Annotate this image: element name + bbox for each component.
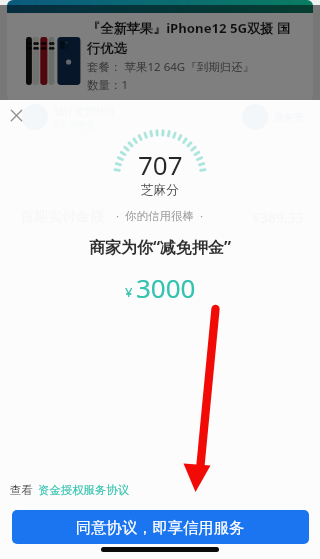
staticText: · 你的信用很棒 · xyxy=(116,208,204,224)
staticText: 芝麻分 xyxy=(141,182,179,198)
staticText: 套餐： 苹果12 64G『到期归还』 xyxy=(87,59,255,75)
staticText: 查看 xyxy=(10,483,33,497)
button[interactable]: 查看 xyxy=(10,483,130,497)
staticText: ¥ xyxy=(125,283,133,301)
staticText: 3000 xyxy=(136,270,196,305)
staticText: 707 xyxy=(138,147,183,182)
staticText: 商家为你“减免押金” xyxy=(89,236,232,258)
staticText: 『全新苹果』iPhone12 5G双摄 国行优选 xyxy=(87,19,301,57)
button[interactable]: 同意协议，即享信用服务 xyxy=(12,510,309,544)
staticText: 数量：1 xyxy=(87,77,129,93)
button[interactable]: Close xyxy=(6,105,27,126)
staticText: 同意协议，即享信用服务 xyxy=(76,518,245,537)
staticText: 资金授权服务协议 xyxy=(38,483,130,497)
